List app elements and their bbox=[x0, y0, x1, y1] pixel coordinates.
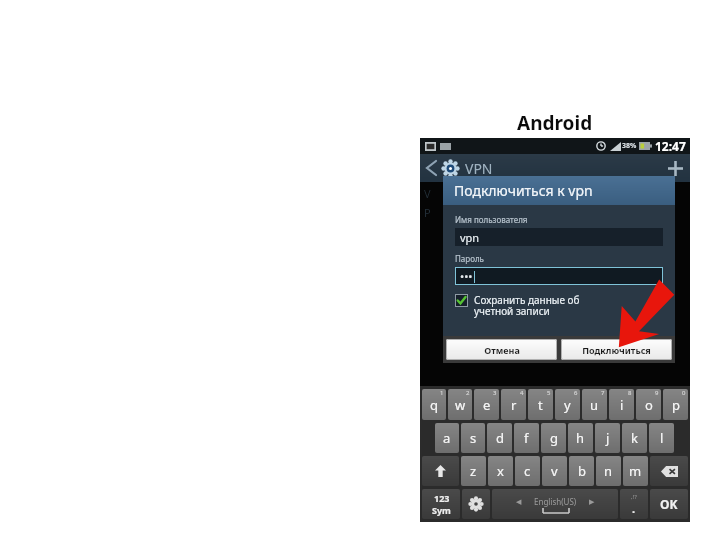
button[interactable]: m bbox=[623, 456, 648, 486]
button[interactable]: OK bbox=[650, 489, 688, 519]
button[interactable]: Add VPN bbox=[660, 154, 690, 182]
staticText: OK bbox=[660, 496, 678, 512]
staticText: ▶ bbox=[589, 498, 595, 506]
staticText: h bbox=[576, 429, 585, 447]
staticText: b bbox=[578, 462, 586, 480]
button[interactable]: q bbox=[422, 389, 446, 420]
staticText: e bbox=[483, 396, 491, 414]
button[interactable]: b bbox=[569, 456, 594, 486]
staticText: 0 bbox=[682, 389, 686, 397]
button[interactable]: t bbox=[528, 389, 553, 420]
staticText: t bbox=[538, 396, 543, 414]
staticText: Android bbox=[517, 110, 593, 136]
staticText: p bbox=[672, 396, 680, 414]
staticText: V bbox=[424, 186, 431, 201]
button[interactable]: Space bbox=[492, 489, 618, 519]
staticText: y bbox=[564, 396, 571, 414]
staticText: VPN bbox=[465, 159, 493, 178]
staticText: 38% bbox=[622, 141, 637, 151]
button[interactable]: f bbox=[514, 423, 539, 453]
button[interactable]: i bbox=[609, 389, 634, 420]
staticText: u bbox=[590, 396, 599, 414]
staticText: l bbox=[660, 429, 664, 447]
staticText: Подключиться к vpn bbox=[454, 181, 593, 200]
button[interactable]: w bbox=[448, 389, 472, 420]
button[interactable]: u bbox=[582, 389, 607, 420]
staticText: o bbox=[645, 396, 653, 414]
staticText: s bbox=[470, 429, 477, 447]
staticText: m bbox=[629, 462, 642, 480]
button[interactable]: x bbox=[488, 456, 513, 486]
button[interactable]: a bbox=[435, 423, 459, 453]
staticText: Имя пользователя bbox=[455, 214, 528, 225]
staticText: 12:47 bbox=[655, 138, 686, 154]
staticText: Пароль bbox=[455, 253, 484, 264]
staticText: . bbox=[632, 501, 636, 516]
button[interactable]: n bbox=[596, 456, 621, 486]
button[interactable]: y bbox=[555, 389, 580, 420]
button[interactable]: e bbox=[474, 389, 499, 420]
button[interactable]: Settings bbox=[462, 489, 490, 519]
staticText: Отмена bbox=[484, 344, 520, 356]
staticText: Sym bbox=[432, 504, 451, 516]
staticText: ••• bbox=[460, 269, 473, 284]
button[interactable]: k bbox=[622, 423, 647, 453]
button[interactable]: v bbox=[542, 456, 567, 486]
staticText: f bbox=[524, 429, 529, 447]
button[interactable]: vpn bbox=[455, 228, 663, 246]
staticText: ,!? bbox=[631, 493, 637, 501]
staticText: 1 bbox=[440, 389, 444, 397]
staticText: q bbox=[430, 396, 438, 414]
staticText: Подключиться bbox=[582, 344, 651, 356]
button[interactable]: z bbox=[461, 456, 486, 486]
staticText: vpn bbox=[460, 230, 480, 245]
staticText: 6 bbox=[574, 389, 578, 397]
staticText: 2 bbox=[466, 389, 470, 397]
staticText: 5 bbox=[547, 389, 551, 397]
button[interactable]: g bbox=[541, 423, 566, 453]
staticText: 9 bbox=[655, 389, 659, 397]
staticText: k bbox=[631, 429, 638, 447]
staticText: 123 bbox=[434, 492, 450, 504]
button[interactable]: j bbox=[595, 423, 620, 453]
staticText: a bbox=[443, 429, 451, 447]
staticText: 7 bbox=[601, 389, 605, 397]
staticText: z bbox=[470, 462, 477, 480]
button[interactable]: ••• bbox=[455, 267, 663, 285]
button[interactable]: d bbox=[487, 423, 512, 453]
staticText: 4 bbox=[520, 389, 524, 397]
button[interactable]: Symbols bbox=[422, 489, 460, 519]
button[interactable]: Сохранить данные об учетной записи bbox=[455, 293, 580, 318]
button[interactable]: Подключиться bbox=[561, 339, 672, 360]
button[interactable]: Отмена bbox=[446, 339, 557, 360]
button[interactable]: Back bbox=[422, 154, 440, 182]
staticText: w bbox=[455, 396, 466, 414]
button[interactable]: Shift bbox=[422, 456, 459, 486]
button[interactable]: o bbox=[636, 389, 661, 420]
staticText: ◀ bbox=[516, 498, 522, 506]
staticText: 3 bbox=[493, 389, 497, 397]
staticText: n bbox=[604, 462, 613, 480]
staticText: P bbox=[424, 205, 431, 220]
button[interactable]: l bbox=[649, 423, 674, 453]
button[interactable]: p bbox=[663, 389, 688, 420]
button[interactable]: c bbox=[515, 456, 540, 486]
staticText: v bbox=[551, 462, 558, 480]
button[interactable]: r bbox=[501, 389, 526, 420]
button[interactable]: Backspace bbox=[650, 456, 688, 486]
staticText: g bbox=[550, 429, 558, 447]
staticText: English(US) bbox=[534, 496, 577, 507]
staticText: d bbox=[496, 429, 504, 447]
staticText: r bbox=[511, 396, 517, 414]
button[interactable]: s bbox=[461, 423, 485, 453]
staticText: j bbox=[606, 429, 610, 447]
staticText: c bbox=[524, 462, 531, 480]
button[interactable]: Period bbox=[620, 489, 648, 519]
staticText: 8 bbox=[628, 389, 632, 397]
button[interactable]: h bbox=[568, 423, 593, 453]
staticText: x bbox=[497, 462, 504, 480]
staticText: Сохранить данные об учетной записи bbox=[474, 293, 580, 318]
staticText: i bbox=[620, 396, 624, 414]
